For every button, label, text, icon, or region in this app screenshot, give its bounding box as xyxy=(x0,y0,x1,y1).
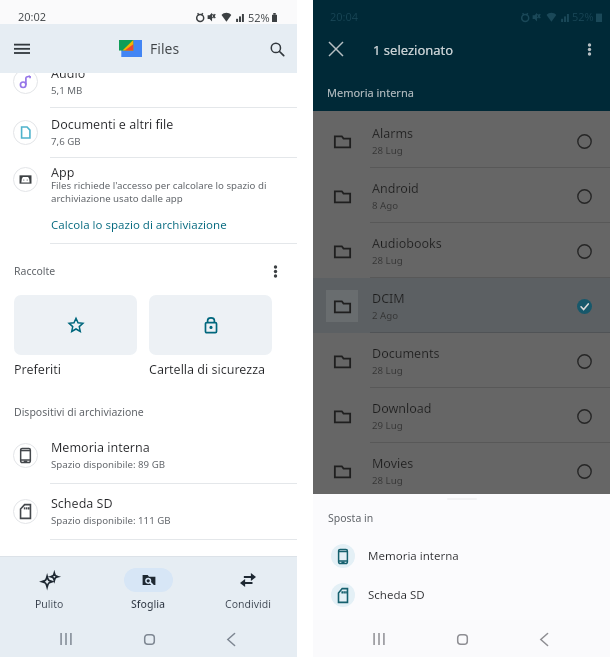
button[interactable]: Indietro xyxy=(531,626,557,652)
staticText: 28 Lug xyxy=(372,144,403,157)
button[interactable]: Download xyxy=(313,388,610,443)
button[interactable]: Calcola lo spazio di archiviazione xyxy=(44,213,234,237)
button[interactable]: Menu xyxy=(9,36,34,61)
button[interactable]: DCIM xyxy=(313,278,610,333)
staticText: DCIM xyxy=(372,290,405,307)
staticText: 5,1 MB xyxy=(51,84,83,97)
staticText: Spazio disponibile: 111 GB xyxy=(51,514,171,527)
staticText: 29 Lug xyxy=(372,419,403,432)
button[interactable]: Pulito xyxy=(0,557,99,620)
button[interactable]: Home xyxy=(449,626,475,652)
staticText: 20:04 xyxy=(330,9,359,24)
staticText: Documenti e altri file xyxy=(51,116,174,133)
button[interactable]: Sfoglia xyxy=(99,557,198,620)
staticText: Condividi xyxy=(225,597,271,611)
staticText: Scheda SD xyxy=(51,495,113,512)
button[interactable]: Audio xyxy=(0,56,297,106)
staticText: Android xyxy=(372,180,419,197)
staticText: 7,6 GB xyxy=(51,135,81,148)
button[interactable]: Documents xyxy=(313,333,610,388)
staticText: Spazio disponibile: 89 GB xyxy=(51,458,166,471)
staticText: Preferiti xyxy=(14,361,62,378)
staticText: 1 selezionato xyxy=(373,41,454,59)
staticText: Memoria interna xyxy=(327,85,414,100)
button[interactable]: Recenti xyxy=(366,626,392,652)
button[interactable]: Chiudi xyxy=(323,36,349,62)
button[interactable]: Movies xyxy=(313,443,610,498)
button[interactable]: Scheda SD xyxy=(313,579,610,611)
staticText: Memoria interna xyxy=(51,439,150,456)
button[interactable]: Cerca xyxy=(264,36,290,62)
button[interactable]: Memoria interna xyxy=(0,427,297,483)
staticText: 28 Lug xyxy=(372,474,403,487)
staticText: Audiobooks xyxy=(372,235,442,252)
staticText: Documents xyxy=(372,345,440,362)
button[interactable]: Altre opzioni xyxy=(576,36,602,62)
staticText: 28 Lug xyxy=(372,364,403,377)
staticText: Movies xyxy=(372,455,414,472)
staticText: App xyxy=(51,164,75,181)
button[interactable]: Audiobooks xyxy=(313,223,610,278)
button[interactable]: Scheda SD xyxy=(0,483,297,539)
staticText: 8 Ago xyxy=(372,199,399,212)
button[interactable]: Alarms xyxy=(313,113,610,168)
staticText: 28 Lug xyxy=(372,254,403,267)
staticText: Files richiede l'accesso per calcolare l… xyxy=(51,179,267,205)
button[interactable]: Home xyxy=(136,626,162,652)
staticText: Sfoglia xyxy=(131,597,166,611)
button[interactable]: Memoria interna xyxy=(313,540,610,572)
button[interactable] xyxy=(149,295,272,355)
staticText: Pulito xyxy=(35,597,64,611)
button[interactable]: Android xyxy=(313,168,610,223)
staticText: Sposta in xyxy=(328,511,374,525)
button[interactable]: Documenti e altri file xyxy=(0,107,297,157)
button[interactable]: Indietro xyxy=(218,626,244,652)
staticText: Cartella di sicurezza xyxy=(149,361,266,378)
button[interactable] xyxy=(14,295,137,355)
staticText: Download xyxy=(372,400,432,417)
button[interactable]: Condividi xyxy=(198,557,297,620)
staticText: Dispositivi di archiviazione xyxy=(14,405,144,419)
button[interactable]: Altre opzioni xyxy=(263,259,287,283)
staticText: Memoria interna xyxy=(368,548,459,564)
staticText: 20:02 xyxy=(18,9,47,24)
staticText: 2 Ago xyxy=(372,309,399,322)
staticText: Raccolte xyxy=(14,264,56,278)
staticText: Alarms xyxy=(372,125,414,142)
staticText: Calcola lo spazio di archiviazione xyxy=(51,217,227,233)
button[interactable]: Recenti xyxy=(53,626,79,652)
staticText: Scheda SD xyxy=(368,587,425,603)
staticText: Audio xyxy=(51,65,86,82)
staticText: 52% xyxy=(572,9,594,24)
staticText: Files xyxy=(150,39,180,58)
staticText: 52% xyxy=(248,10,270,24)
